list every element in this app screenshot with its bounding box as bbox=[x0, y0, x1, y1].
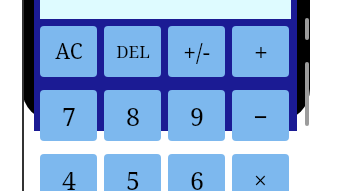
staticText: DEL bbox=[116, 40, 150, 63]
button[interactable]: AC bbox=[40, 26, 97, 77]
button[interactable]: × bbox=[232, 154, 289, 191]
button[interactable]: DEL bbox=[104, 26, 161, 77]
staticText: AC bbox=[55, 37, 83, 66]
button[interactable]: Power bbox=[305, 62, 309, 126]
button[interactable]: 4 bbox=[40, 154, 97, 191]
button[interactable]: 8 bbox=[104, 90, 161, 141]
button[interactable]: 7 bbox=[40, 90, 97, 141]
staticText: 9 bbox=[190, 99, 204, 133]
button[interactable]: 6 bbox=[168, 154, 225, 191]
button[interactable]: + bbox=[232, 26, 289, 77]
button[interactable]: 9 bbox=[168, 90, 225, 141]
staticText: +/- bbox=[183, 36, 210, 67]
staticText: + bbox=[254, 35, 268, 69]
staticText: 8 bbox=[126, 99, 140, 133]
staticText: 4 bbox=[62, 163, 76, 191]
button[interactable]: − bbox=[232, 90, 289, 141]
staticText: 5 bbox=[126, 163, 140, 191]
button[interactable]: 5 bbox=[104, 154, 161, 191]
button[interactable]: +/- bbox=[168, 26, 225, 77]
button[interactable]: Volume bbox=[305, 18, 309, 40]
staticText: 7 bbox=[62, 99, 76, 133]
staticText: 6 bbox=[190, 163, 204, 191]
staticText: − bbox=[253, 99, 268, 133]
staticText: × bbox=[254, 164, 267, 191]
